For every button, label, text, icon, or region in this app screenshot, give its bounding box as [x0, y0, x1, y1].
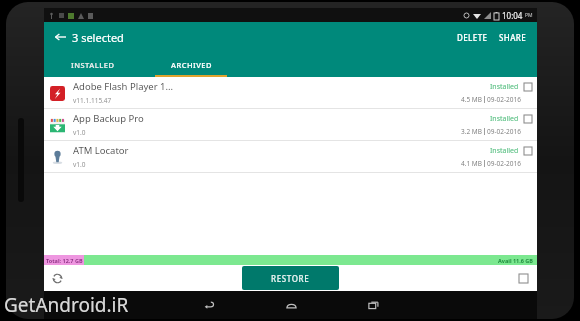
staticText: INSTALLED — [71, 60, 115, 70]
button[interactable]: Adobe Flash Player 1... — [44, 77, 537, 109]
staticText: v11.1.115.47 — [73, 96, 112, 105]
staticText: Avail 11.6 GB — [498, 257, 534, 264]
button[interactable]: Select all — [517, 272, 529, 284]
staticText: 4.5 MB — [461, 95, 482, 104]
button[interactable]: Select Adobe Flash Player 1... — [524, 83, 532, 91]
button[interactable]: Home — [281, 295, 301, 315]
staticText: 09-02-2016 — [487, 95, 521, 104]
staticText: 4.1 MB — [461, 159, 482, 168]
button[interactable]: App Backup Pro — [44, 109, 537, 141]
button[interactable]: ATM Locator — [44, 141, 537, 173]
staticText: Adobe Flash Player 1... — [73, 80, 174, 93]
staticText: SHARE — [499, 32, 527, 43]
button[interactable]: Refresh — [49, 270, 65, 286]
staticText: 10:04 — [502, 10, 523, 21]
button[interactable]: Back — [50, 27, 70, 47]
staticText: ARCHIVED — [171, 60, 212, 70]
staticText: ATM Locator — [73, 144, 129, 157]
staticText: 09-02-2016 — [487, 159, 521, 168]
staticText: 09-02-2016 — [487, 127, 521, 136]
staticText: 3.2 MB — [461, 127, 482, 136]
button[interactable]: ARCHIVED — [142, 52, 240, 77]
staticText: 3 selected — [72, 30, 124, 45]
staticText: Installed — [490, 146, 519, 156]
staticText: v1.0 — [73, 128, 86, 137]
staticText: Installed — [490, 82, 519, 92]
staticText: App Backup Pro — [73, 112, 144, 125]
staticText: v1.0 — [73, 160, 86, 169]
button[interactable]: Back — [199, 295, 219, 315]
staticText: GetAndroid.iR — [4, 292, 129, 318]
staticText: RESTORE — [271, 273, 310, 284]
button[interactable]: DELETE — [453, 28, 492, 47]
button[interactable]: RESTORE — [242, 266, 339, 290]
button[interactable]: SHARE — [495, 28, 531, 47]
button[interactable]: INSTALLED — [44, 52, 142, 77]
button[interactable]: Recent apps — [363, 295, 383, 315]
staticText: DELETE — [457, 32, 488, 43]
button[interactable]: Select ATM Locator — [524, 147, 532, 155]
staticText: Installed — [490, 114, 519, 124]
button[interactable]: Select App Backup Pro — [524, 115, 532, 123]
staticText: PM — [525, 12, 533, 19]
staticText: Total: 12.7 GB — [46, 257, 83, 264]
